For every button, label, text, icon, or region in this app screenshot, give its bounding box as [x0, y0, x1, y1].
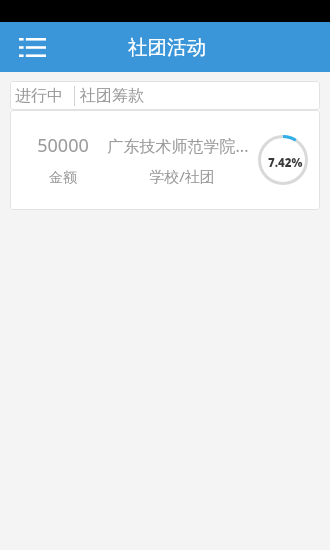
- staticText: 7.42%: [268, 155, 303, 171]
- button[interactable]: 社团筹款: [75, 81, 144, 110]
- staticText: 社团活动: [128, 35, 206, 60]
- button[interactable]: 进行中: [10, 81, 74, 110]
- staticText: 50000: [28, 133, 98, 158]
- button[interactable]: Open navigation menu: [19, 32, 46, 62]
- staticText: 金额: [28, 169, 98, 187]
- staticText: 社团筹款: [80, 86, 144, 106]
- staticText: 学校/社团: [106, 166, 258, 186]
- staticText: 进行中: [15, 86, 63, 106]
- button[interactable]: 50000: [10, 110, 320, 210]
- staticText: 广东技术师范学院...: [102, 135, 254, 157]
